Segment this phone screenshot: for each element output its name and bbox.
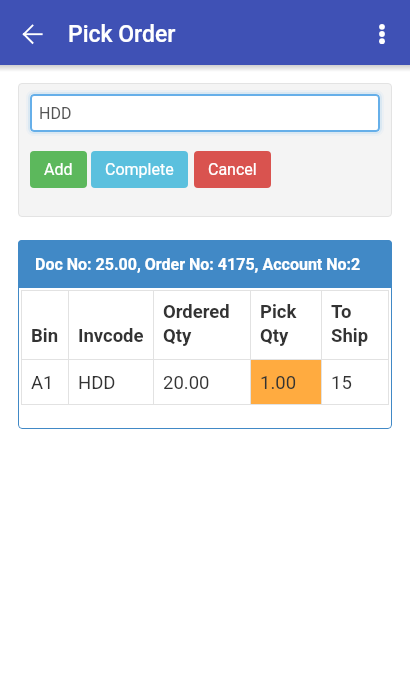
button[interactable]: Back: [10, 11, 54, 55]
staticText: Bin: [31, 325, 59, 347]
staticText: Complete: [105, 160, 174, 179]
staticText: HDD: [78, 372, 116, 394]
button[interactable]: Cancel: [194, 151, 271, 188]
button[interactable]: Complete: [91, 151, 188, 188]
staticText: A1: [31, 372, 54, 394]
staticText: Pick Order: [68, 21, 176, 48]
button[interactable]: HDD: [30, 94, 380, 132]
staticText: To Ship: [331, 301, 369, 347]
staticText: Cancel: [208, 160, 257, 179]
staticText: Ordered Qty: [163, 301, 230, 347]
staticText: 15: [331, 372, 352, 394]
staticText: 1.00: [260, 372, 297, 394]
staticText: Doc No: 25.00, Order No: 4175, Account N…: [35, 255, 361, 274]
staticText: Invcode: [78, 325, 144, 347]
button[interactable]: More options: [360, 11, 404, 55]
staticText: HDD: [39, 104, 72, 123]
staticText: 20.00: [163, 372, 210, 394]
staticText: Pick Qty: [260, 301, 297, 347]
button[interactable]: Add: [30, 151, 87, 188]
staticText: Add: [44, 160, 73, 179]
